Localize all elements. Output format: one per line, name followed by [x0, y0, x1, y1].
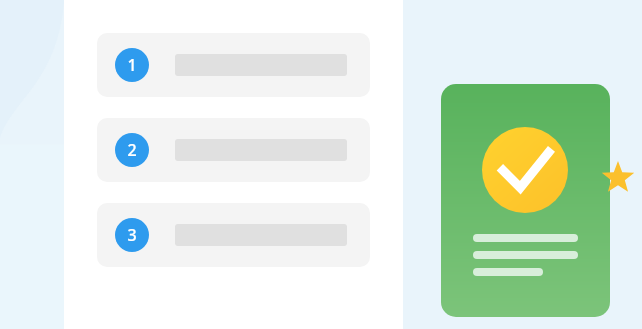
- button[interactable]: Completed certificate: [441, 84, 610, 317]
- staticText: 1: [127, 54, 137, 76]
- staticText: 2: [127, 139, 137, 161]
- button[interactable]: 2: [97, 118, 370, 182]
- button[interactable]: 1: [97, 33, 370, 97]
- staticText: 3: [127, 224, 137, 246]
- button[interactable]: 3: [97, 203, 370, 267]
- other: Star: [600, 160, 636, 196]
